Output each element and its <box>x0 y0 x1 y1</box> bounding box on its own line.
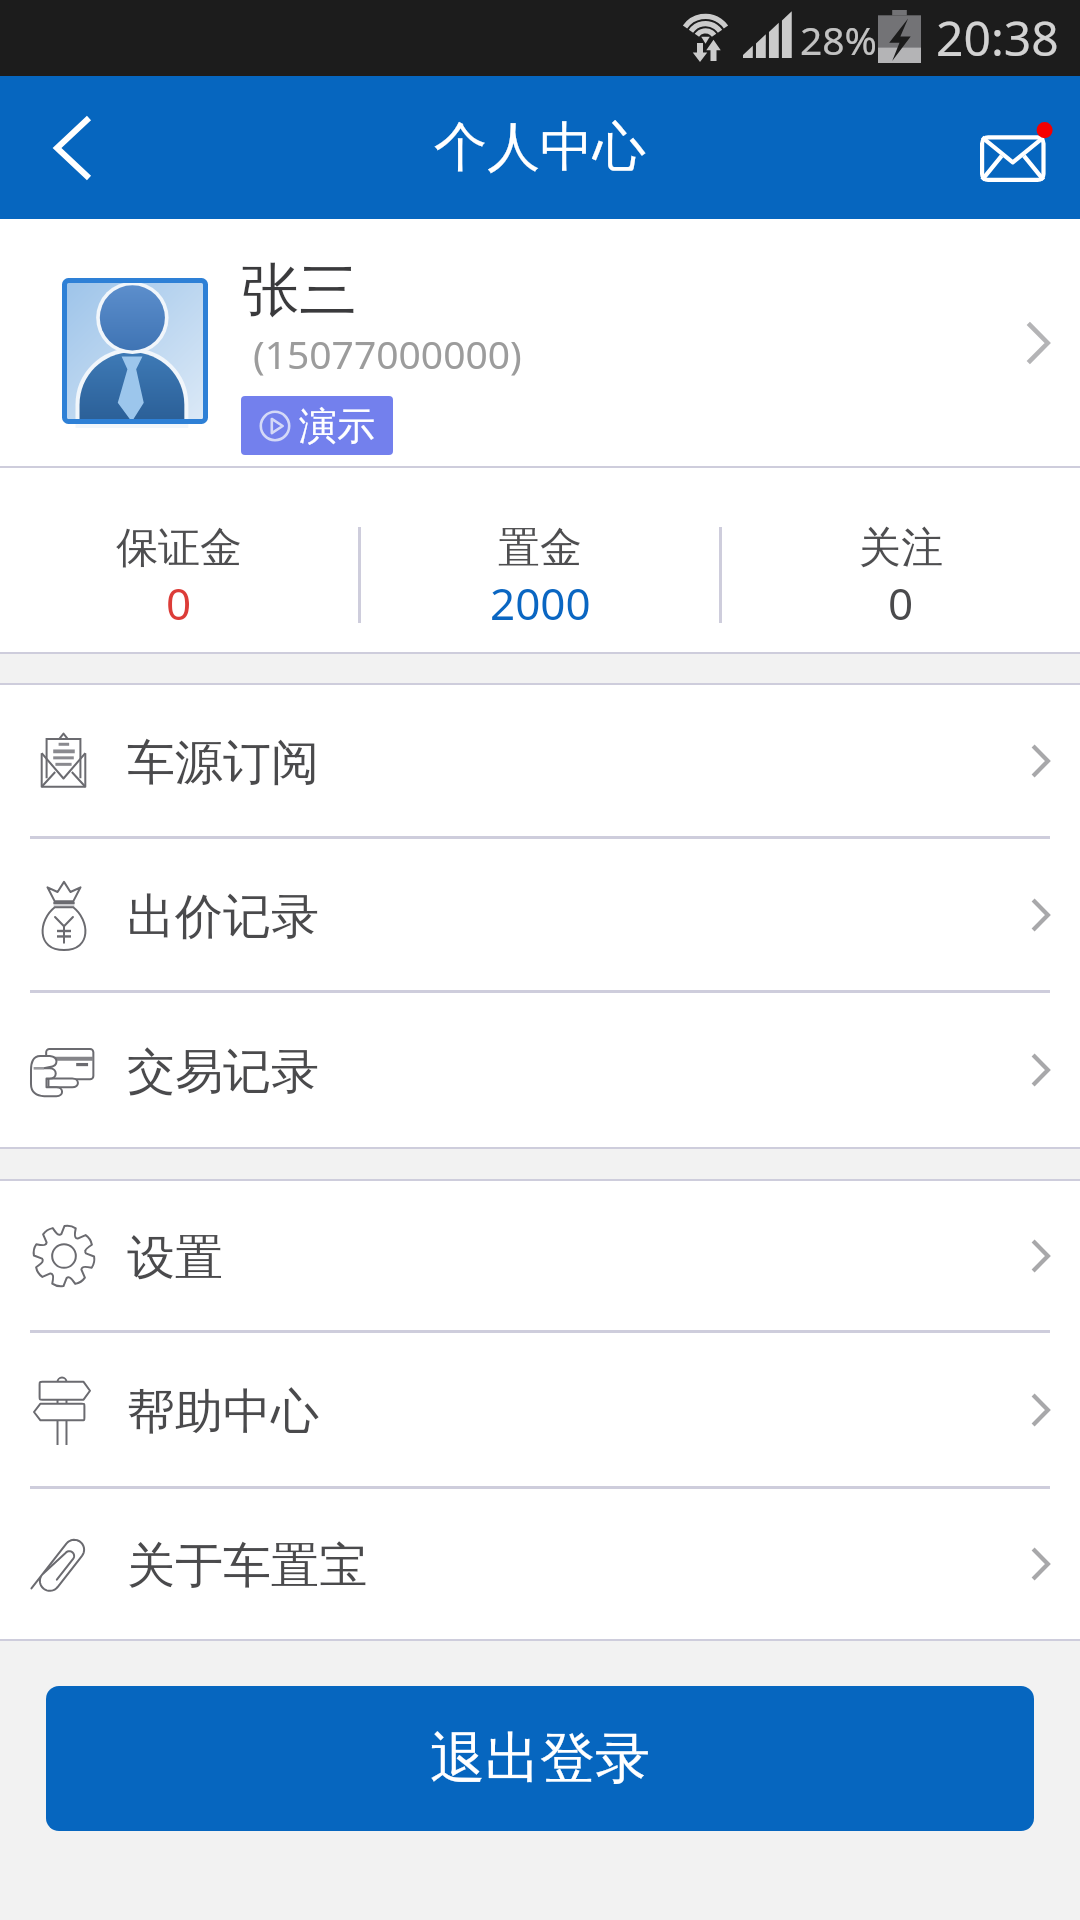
button[interactable]: 帮助中心 <box>0 1333 1080 1486</box>
staticText: 置金 <box>498 522 582 575</box>
staticText: 张三 <box>241 254 357 327</box>
button[interactable]: 车源订阅 <box>0 685 1080 836</box>
staticText: 20:38 <box>936 5 1059 70</box>
staticText: (15077000000) <box>253 327 522 380</box>
staticText: 关于车置宝 <box>127 1536 367 1596</box>
staticText: 个人中心 <box>434 114 646 181</box>
button[interactable]: 关于车置宝 <box>0 1489 1080 1639</box>
staticText: 设置 <box>127 1228 223 1288</box>
staticText: 交易记录 <box>127 1042 319 1102</box>
button[interactable]: 设置 <box>0 1181 1080 1330</box>
staticText: 出价记录 <box>127 887 319 947</box>
staticText: 保证金 <box>116 522 242 575</box>
staticText: 0 <box>888 573 914 633</box>
staticText: 2000 <box>490 573 591 633</box>
staticText: 退出登录 <box>430 1724 650 1793</box>
button[interactable]: Messages <box>950 76 1080 219</box>
staticText: 关注 <box>859 522 943 575</box>
staticText: 0 <box>166 573 192 633</box>
button[interactable]: 关注 <box>722 468 1080 652</box>
button[interactable]: 演示 <box>241 396 393 455</box>
button[interactable]: 置金 <box>361 468 719 652</box>
button[interactable]: 出价记录 <box>0 839 1080 990</box>
button[interactable]: 张三 <box>0 219 1080 466</box>
staticText: 帮助中心 <box>127 1382 319 1442</box>
staticText: 演示 <box>299 402 375 450</box>
button[interactable]: 退出登录 <box>46 1686 1034 1831</box>
button[interactable]: Back <box>0 76 148 219</box>
button[interactable]: 保证金 <box>0 468 358 652</box>
button[interactable]: 交易记录 <box>0 993 1080 1147</box>
staticText: 28% <box>800 13 878 66</box>
staticText: 车源订阅 <box>127 733 319 793</box>
